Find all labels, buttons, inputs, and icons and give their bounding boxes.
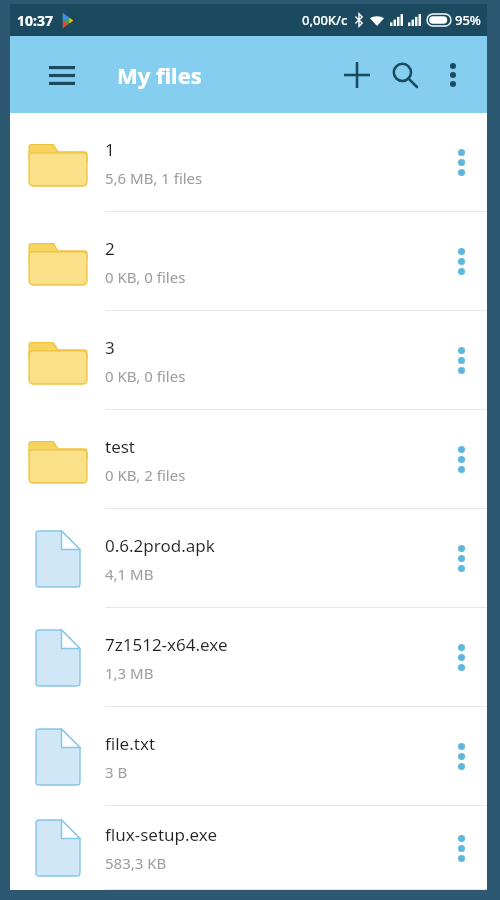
- staticText: 5,6 MB, 1 files: [105, 168, 203, 188]
- button[interactable]: 3: [10, 311, 487, 410]
- staticText: 0.6.2prod.apk: [105, 534, 215, 557]
- staticText: 0 KB, 0 files: [105, 267, 186, 287]
- button[interactable]: Search: [381, 51, 429, 99]
- staticText: 3 B: [105, 762, 128, 782]
- staticText: 3: [105, 336, 115, 359]
- staticText: 0,00K/c: [302, 11, 348, 29]
- button[interactable]: More options: [429, 51, 477, 99]
- staticText: 583,3 KB: [105, 853, 167, 873]
- staticText: 95%: [455, 11, 481, 29]
- button[interactable]: Item options: [435, 410, 487, 509]
- button[interactable]: test: [10, 410, 487, 509]
- staticText: test: [105, 435, 136, 458]
- staticText: 0 KB, 0 files: [105, 366, 186, 386]
- staticText: 10:37: [17, 11, 53, 30]
- staticText: 2: [105, 237, 115, 260]
- button[interactable]: 2: [10, 212, 487, 311]
- button[interactable]: Item options: [435, 707, 487, 806]
- button[interactable]: Menu: [40, 53, 84, 97]
- button[interactable]: Add: [333, 51, 381, 99]
- staticText: 4,1 MB: [105, 564, 154, 584]
- staticText: flux-setup.exe: [105, 823, 218, 846]
- button[interactable]: Item options: [435, 806, 487, 890]
- staticText: 1,3 MB: [105, 663, 154, 683]
- staticText: 1: [105, 138, 115, 161]
- button[interactable]: 1: [10, 113, 487, 212]
- button[interactable]: Item options: [435, 212, 487, 311]
- button[interactable]: file.txt: [10, 707, 487, 806]
- staticText: file.txt: [105, 732, 156, 755]
- button[interactable]: Item options: [435, 311, 487, 410]
- button[interactable]: Item options: [435, 509, 487, 608]
- button[interactable]: Item options: [435, 113, 487, 212]
- button[interactable]: 7z1512-x64.exe: [10, 608, 487, 707]
- staticText: My files: [117, 60, 202, 90]
- button[interactable]: 0.6.2prod.apk: [10, 509, 487, 608]
- button[interactable]: Item options: [435, 608, 487, 707]
- staticText: 0 KB, 2 files: [105, 465, 186, 485]
- button[interactable]: flux-setup.exe: [10, 806, 487, 890]
- staticText: 7z1512-x64.exe: [105, 633, 228, 656]
